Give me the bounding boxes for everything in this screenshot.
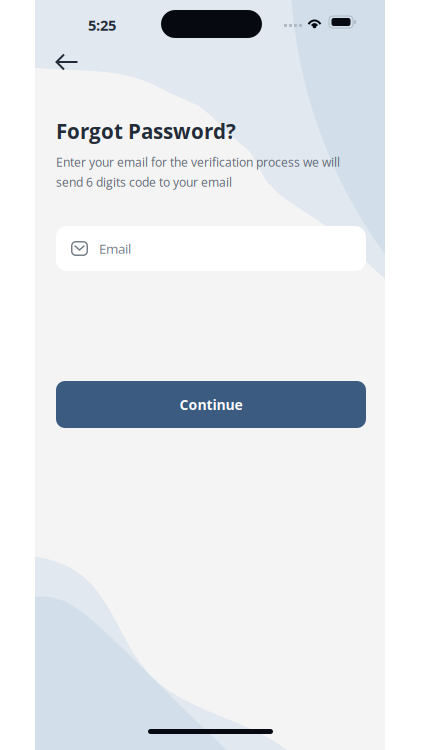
staticText: Enter your email for the verification pr… <box>56 154 340 170</box>
button[interactable]: Back <box>45 40 89 84</box>
staticText: Continue <box>179 395 242 414</box>
staticText: Email <box>99 239 131 258</box>
staticText: Forgot Password? <box>56 117 236 145</box>
staticText: send 6 digits code to your email <box>56 174 232 190</box>
button[interactable]: Continue <box>56 381 366 428</box>
staticText: 5:25 <box>88 15 116 35</box>
